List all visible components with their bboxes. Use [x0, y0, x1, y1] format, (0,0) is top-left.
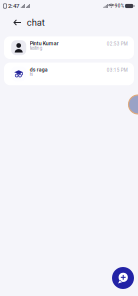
staticText: 02:53 PM [107, 41, 128, 47]
staticText: 2:47 [8, 2, 19, 10]
staticText: ds raga [30, 67, 48, 73]
staticText: testing [30, 45, 43, 51]
staticText: Pintu Kumar [30, 40, 59, 46]
button[interactable]: Pintu Kumar [4, 36, 134, 59]
button[interactable]: ds raga [4, 63, 134, 85]
button[interactable]: Back [10, 15, 24, 29]
staticText: 03:15 PM [107, 67, 128, 73]
staticText: 90% [115, 3, 124, 9]
staticText: hi [30, 72, 33, 77]
staticText: chat [27, 17, 45, 28]
button[interactable]: New chat [112, 267, 134, 289]
